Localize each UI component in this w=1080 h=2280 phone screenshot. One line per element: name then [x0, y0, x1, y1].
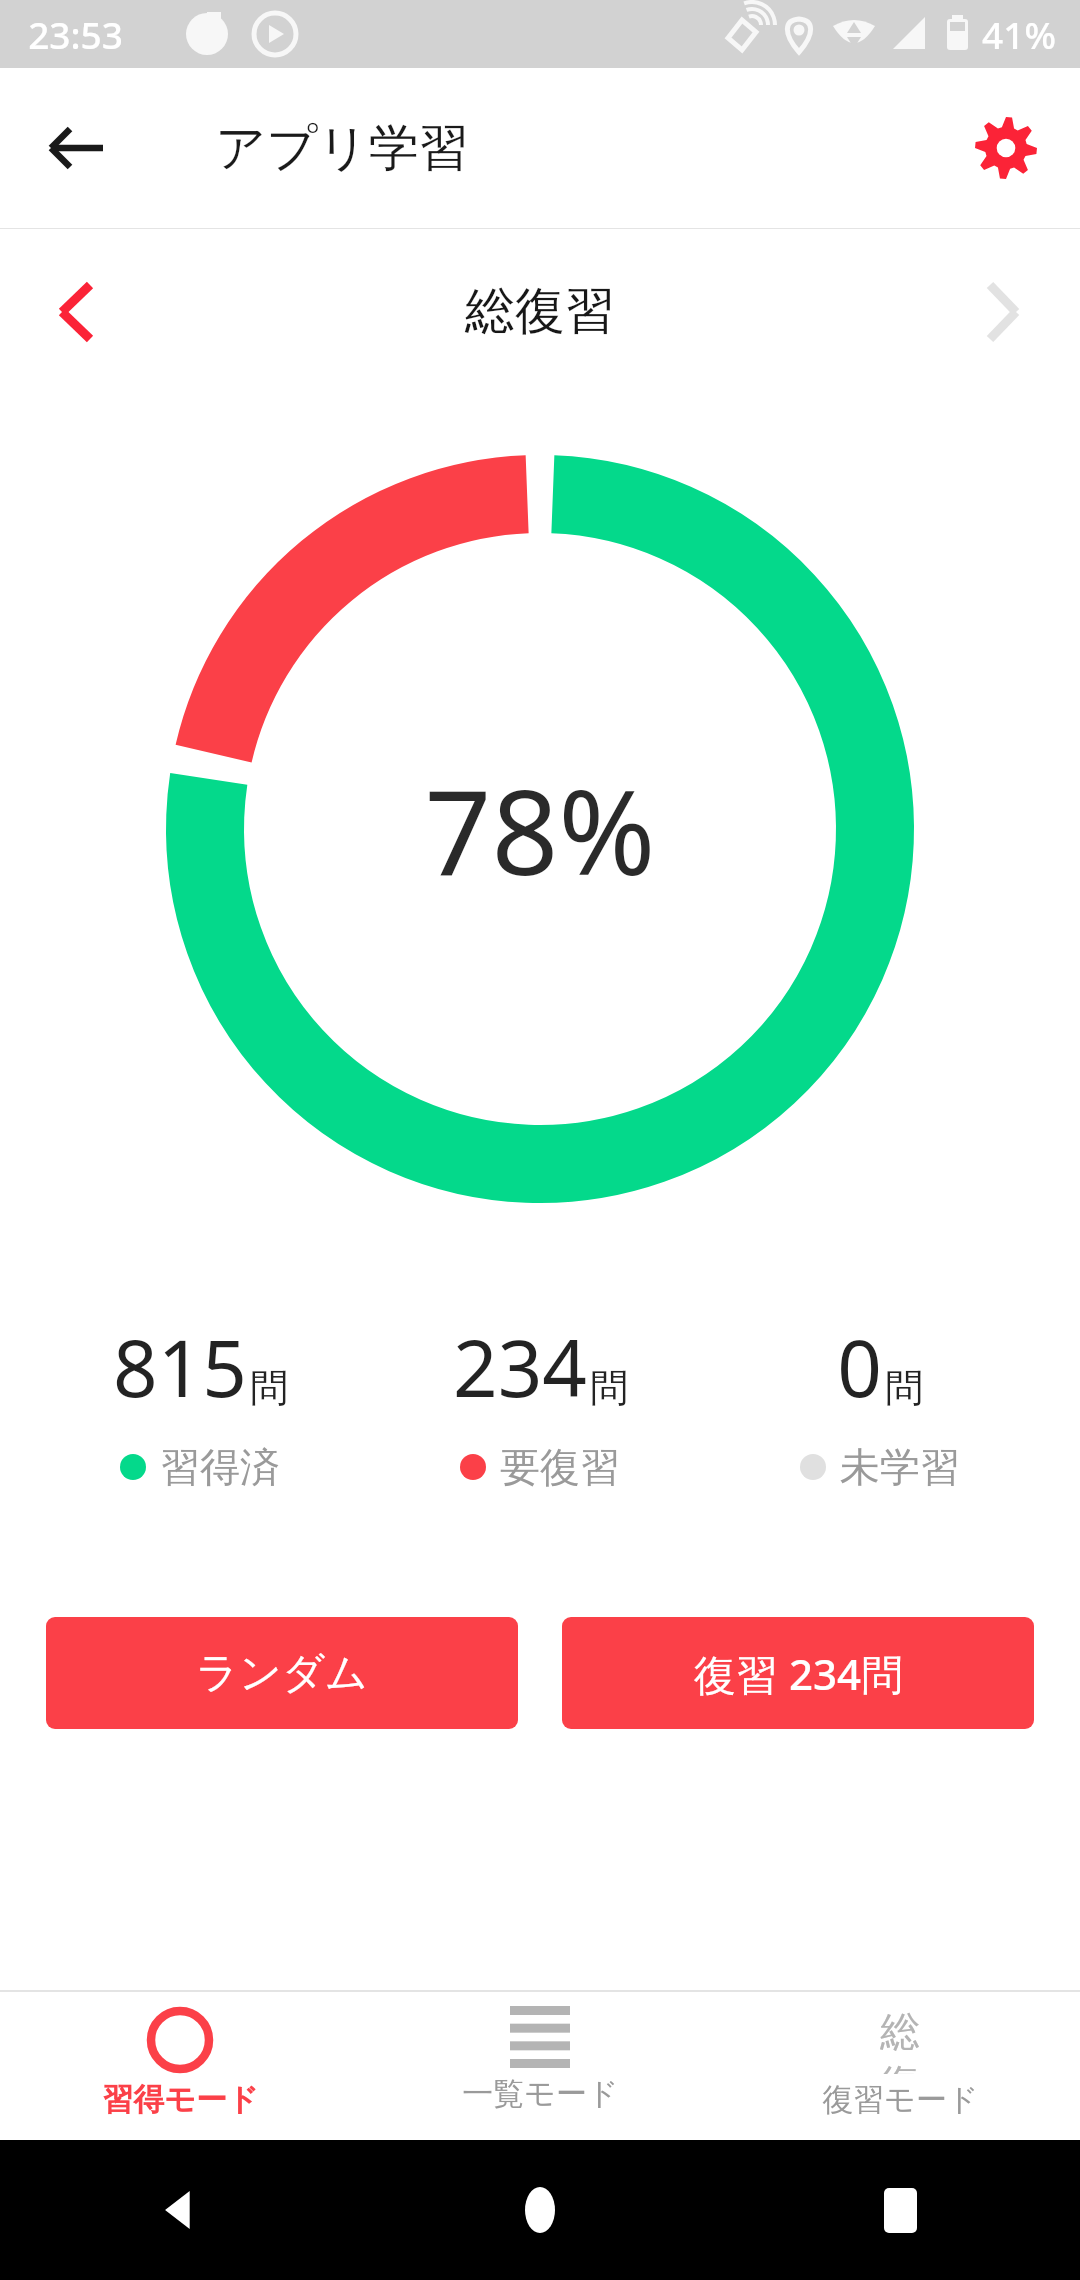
staticText: 復習 234問: [694, 1645, 903, 1702]
button[interactable]: ランダム: [46, 1617, 518, 1729]
staticText: 習得モード: [102, 2080, 259, 2119]
staticText: 問: [885, 1364, 923, 1412]
staticText: 一覧モード: [462, 2074, 619, 2113]
staticText: 234: [453, 1314, 587, 1420]
button[interactable]: 一覧モード: [360, 1992, 720, 2113]
staticText: 0: [837, 1314, 882, 1420]
staticText: 78%: [424, 750, 656, 909]
staticText: 問: [250, 1364, 288, 1412]
button[interactable]: 習得モード: [0, 1992, 360, 2119]
button[interactable]: Next: [948, 257, 1058, 367]
button[interactable]: Back: [135, 2165, 225, 2255]
button[interactable]: Recents: [855, 2165, 945, 2255]
button[interactable]: Settings: [958, 100, 1054, 196]
staticText: 総復習: [866, 2006, 934, 2074]
staticText: アプリ学習: [215, 117, 469, 180]
staticText: 総復習: [465, 280, 615, 343]
button[interactable]: Home: [495, 2165, 585, 2255]
staticText: 問: [590, 1364, 628, 1412]
staticText: 習得済: [160, 1442, 280, 1492]
staticText: 23:53: [28, 9, 123, 59]
staticText: ランダム: [196, 1647, 368, 1700]
button[interactable]: 総復習: [720, 1992, 1080, 2119]
button[interactable]: 復習 234問: [562, 1617, 1034, 1729]
button[interactable]: Previous: [20, 257, 130, 367]
staticText: 815: [113, 1314, 247, 1420]
staticText: 復習モード: [822, 2080, 979, 2119]
staticText: 要復習: [500, 1442, 620, 1492]
button[interactable]: Back: [28, 100, 124, 196]
staticText: 41%: [982, 9, 1056, 59]
staticText: 未学習: [840, 1442, 960, 1492]
